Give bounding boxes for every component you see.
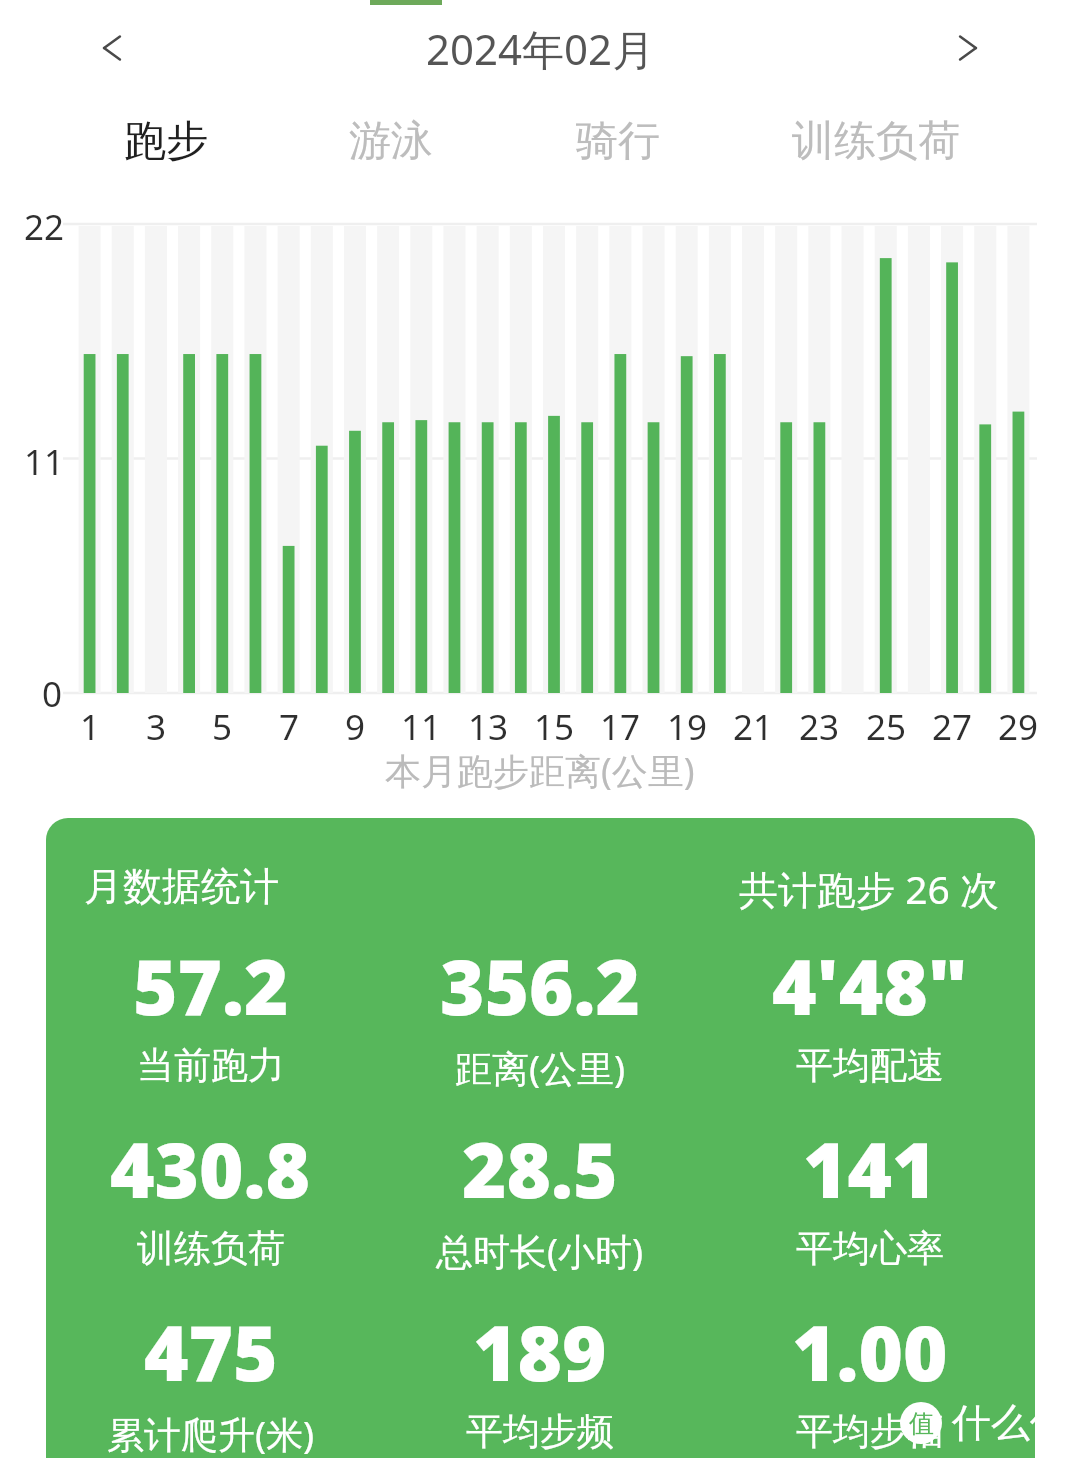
staticText: 21 — [723, 703, 783, 751]
staticText: 57.2 — [133, 934, 289, 1038]
staticText: 月数据统计 — [84, 862, 279, 911]
staticText: 累计爬升(米) — [107, 1408, 315, 1458]
staticText: 0 — [42, 670, 63, 718]
staticText: 训练负荷 — [137, 1225, 285, 1272]
staticText: 23 — [789, 703, 849, 751]
staticText: 总时长(小时) — [436, 1225, 644, 1276]
staticText: 11 — [391, 703, 451, 751]
button[interactable]: 骑行 — [576, 108, 660, 174]
button[interactable]: 游泳 — [349, 108, 433, 174]
staticText: 17 — [590, 703, 650, 751]
staticText: 共计跑步 26 次 — [739, 862, 999, 915]
button[interactable]: 跑步 — [124, 108, 208, 174]
staticText: 平均心率 — [796, 1225, 944, 1272]
staticText: 平均步幅 — [796, 1408, 944, 1455]
staticText: 29 — [988, 703, 1048, 751]
staticText: 15 — [524, 703, 584, 751]
staticText: 骑行 — [576, 115, 660, 168]
staticText: 平均步频 — [466, 1408, 614, 1455]
staticText: 平均配速 — [796, 1042, 944, 1089]
staticText: 5 — [192, 703, 252, 751]
staticText: 22 — [24, 203, 65, 251]
staticText: 189 — [473, 1300, 607, 1404]
staticText: 19 — [657, 703, 717, 751]
staticText: 1.00 — [792, 1300, 948, 1404]
staticText: 当前跑力 — [137, 1042, 285, 1089]
button[interactable]: Previous month — [80, 16, 144, 80]
staticText: 356.2 — [440, 934, 641, 1038]
staticText: 25 — [856, 703, 916, 751]
staticText: 训练负荷 — [792, 115, 960, 168]
staticText: 本月跑步距离(公里) — [385, 746, 695, 795]
staticText: 430.8 — [110, 1117, 311, 1221]
button[interactable]: 训练负荷 — [792, 108, 960, 174]
staticText: 7 — [259, 703, 319, 751]
staticText: 9 — [325, 703, 385, 751]
staticText: 什么值得买 — [952, 1398, 1080, 1447]
staticText: 跑步 — [124, 115, 208, 168]
staticText: 3 — [126, 703, 186, 751]
button[interactable]: Next month — [936, 16, 1000, 80]
staticText: 28.5 — [462, 1117, 618, 1221]
staticText: 4'48" — [772, 934, 968, 1038]
staticText: 141 — [803, 1117, 937, 1221]
button[interactable]: 月数据统计 — [46, 818, 1035, 1458]
staticText: 2024年02月 — [426, 20, 655, 77]
staticText: 27 — [922, 703, 982, 751]
staticText: 1 — [60, 703, 120, 751]
staticText: 13 — [458, 703, 518, 751]
staticText: 475 — [144, 1300, 278, 1404]
staticText: 11 — [24, 438, 65, 486]
staticText: 距离(公里) — [455, 1042, 626, 1093]
staticText: 值 — [909, 1408, 934, 1439]
staticText: 游泳 — [349, 115, 433, 168]
